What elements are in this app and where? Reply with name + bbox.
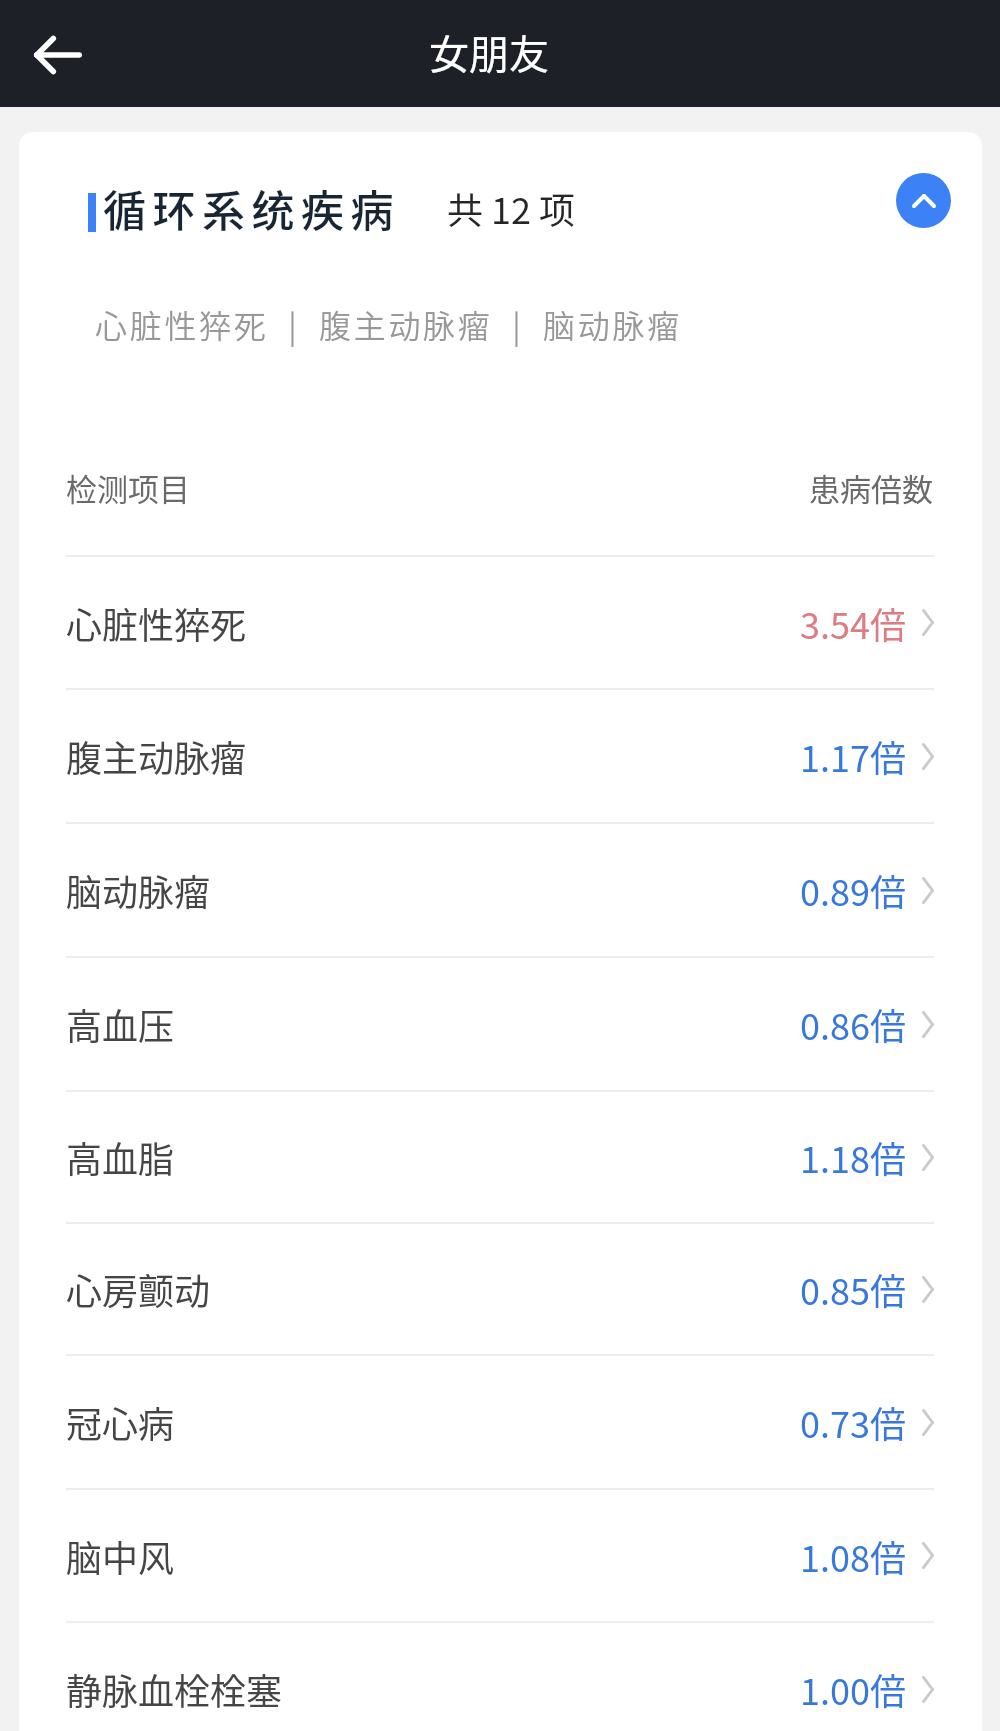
staticText: 高血压 xyxy=(66,998,175,1050)
staticText: 0.89倍 xyxy=(800,864,906,916)
button[interactable]: Collapse section xyxy=(896,173,951,228)
staticText: 心脏性猝死 xyxy=(66,597,247,649)
staticText: 0.86倍 xyxy=(800,998,906,1050)
staticText: 3.54倍 xyxy=(800,597,906,649)
staticText: 女朋友 xyxy=(429,23,549,81)
button[interactable]: 心脏性猝死 xyxy=(19,557,982,688)
button[interactable]: 冠心病 xyxy=(19,1356,982,1488)
staticText: 0.73倍 xyxy=(800,1396,906,1448)
staticText: 心房颤动 xyxy=(66,1263,211,1315)
staticText: 循环系统疾病 xyxy=(103,177,400,239)
staticText: 检测项目 xyxy=(66,465,190,510)
staticText: 冠心病 xyxy=(66,1396,175,1448)
button[interactable]: 脑动脉瘤 xyxy=(19,824,982,956)
staticText: 高血脂 xyxy=(66,1131,175,1183)
staticText: 患病倍数 xyxy=(809,465,933,510)
button[interactable]: 心房颤动 xyxy=(19,1224,982,1354)
staticText: 静脉血栓栓塞 xyxy=(66,1663,283,1715)
button[interactable]: 高血压 xyxy=(19,958,982,1090)
staticText: 1.00倍 xyxy=(800,1663,906,1715)
staticText: 1.08倍 xyxy=(800,1530,906,1582)
button[interactable]: 静脉血栓栓塞 xyxy=(19,1623,982,1731)
button[interactable]: 高血脂 xyxy=(19,1092,982,1222)
staticText: 0.85倍 xyxy=(800,1263,906,1315)
staticText: 共 12 项 xyxy=(447,182,576,234)
staticText: 腹主动脉瘤 xyxy=(66,730,247,782)
staticText: 脑动脉瘤 xyxy=(66,864,211,916)
button[interactable]: Back xyxy=(0,0,112,107)
button[interactable]: 腹主动脉瘤 xyxy=(19,690,982,822)
staticText: 脑中风 xyxy=(66,1530,175,1582)
staticText: 1.17倍 xyxy=(800,730,906,782)
button[interactable]: 脑中风 xyxy=(19,1490,982,1621)
staticText: 心脏性猝死 | 腹主动脉瘤 | 脑动脉瘤 xyxy=(95,301,682,347)
staticText: 1.18倍 xyxy=(800,1131,906,1183)
